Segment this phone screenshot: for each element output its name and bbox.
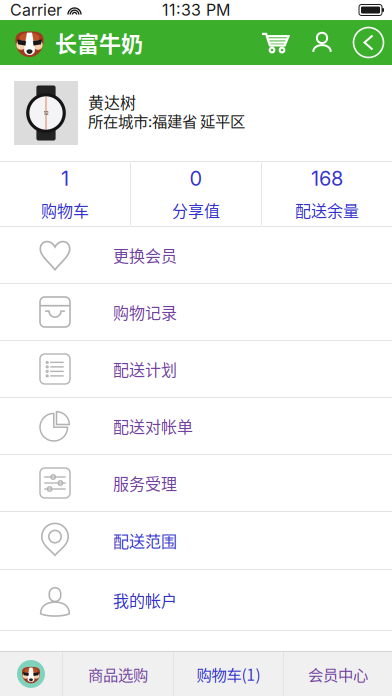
staticText: 12 <box>43 110 48 116</box>
staticText: 商品选购 <box>88 663 148 685</box>
staticText: 黄达树 <box>88 90 136 113</box>
button[interactable]: 会员中心 <box>284 652 392 696</box>
button[interactable]: 168 <box>262 162 392 226</box>
button[interactable]: 1 <box>0 162 130 226</box>
button[interactable]: 我的帐户 <box>0 570 392 631</box>
staticText: 所在城市:福建省 延平区 <box>88 109 245 132</box>
button[interactable]: 配送范围 <box>0 512 392 570</box>
button[interactable]: 0 <box>131 162 261 226</box>
button[interactable]: 购物记录 <box>0 284 392 341</box>
staticText: 购物记录 <box>113 300 177 324</box>
staticText: Carrier <box>10 0 62 20</box>
button[interactable]: 服务受理 <box>0 455 392 512</box>
button[interactable]: 返回 <box>345 20 392 65</box>
staticText: 会员中心 <box>308 663 368 685</box>
staticText: 服务受理 <box>113 471 177 495</box>
button[interactable]: 商品选购 <box>63 652 173 696</box>
staticText: 配送余量 <box>295 198 359 222</box>
button[interactable]: 首页 <box>0 652 62 696</box>
staticText: 我的帐户 <box>113 588 177 612</box>
staticText: 配送计划 <box>113 357 177 381</box>
button[interactable]: 购物车(1) <box>174 652 283 696</box>
staticText: 分享值 <box>172 198 220 222</box>
staticText: 0 <box>189 166 202 190</box>
staticText: 1 <box>61 166 69 190</box>
staticText: 购物车 <box>41 198 89 222</box>
staticText: 购物车(1) <box>196 663 260 685</box>
button[interactable]: 配送对帐单 <box>0 398 392 455</box>
staticText: 长富牛奶 <box>55 27 143 58</box>
staticText: 168 <box>311 166 343 190</box>
button[interactable]: 账户 <box>299 20 345 65</box>
button[interactable]: 配送计划 <box>0 341 392 398</box>
staticText: 更换会员 <box>113 243 177 267</box>
button[interactable]: 购物车 <box>251 20 299 65</box>
staticText: 配送对帐单 <box>113 414 193 438</box>
staticText: 11:33 PM <box>162 0 230 20</box>
staticText: 配送范围 <box>113 529 177 552</box>
button[interactable]: 更换会员 <box>0 227 392 284</box>
